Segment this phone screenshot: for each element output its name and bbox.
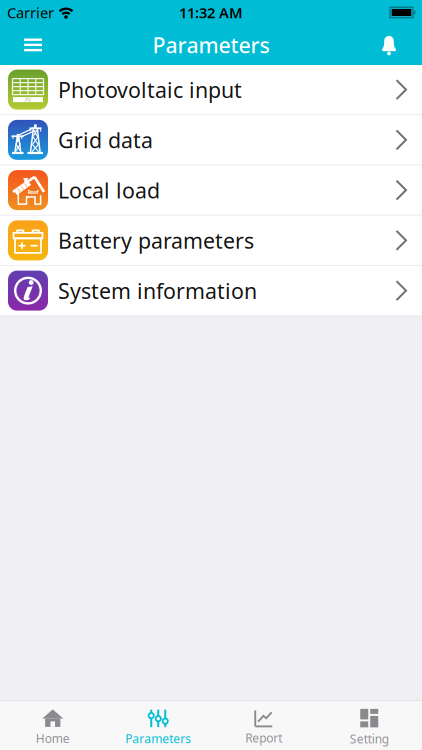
staticText: Carrier <box>7 3 54 22</box>
button[interactable]: Setting <box>316 701 422 750</box>
staticText: PV <box>25 96 31 103</box>
staticText: Report <box>245 730 282 746</box>
staticText: Grid data <box>58 126 153 154</box>
staticText: Setting <box>350 731 389 747</box>
button[interactable]: Battery parameters <box>0 216 422 265</box>
staticText: 11:32 AM <box>179 3 243 22</box>
staticText: Parameters <box>125 731 191 746</box>
staticText: Roof <box>27 188 38 195</box>
button[interactable]: Report <box>211 701 316 750</box>
button[interactable]: Home <box>0 701 105 750</box>
button[interactable]: System information <box>0 266 422 315</box>
staticText: Photovoltaic input <box>58 75 242 104</box>
staticText: Parameters <box>152 31 269 59</box>
staticText: System information <box>58 276 257 305</box>
staticText: Local load <box>58 176 160 204</box>
button[interactable]: PV <box>0 65 422 114</box>
button[interactable]: Parameters <box>105 701 211 750</box>
staticText: Home <box>36 730 70 746</box>
staticText: Battery parameters <box>58 226 254 254</box>
button[interactable]: Menu <box>0 38 42 51</box>
button[interactable]: Notifications <box>381 34 422 55</box>
button[interactable]: Grid data <box>0 115 422 164</box>
button[interactable]: Roof <box>0 165 422 215</box>
